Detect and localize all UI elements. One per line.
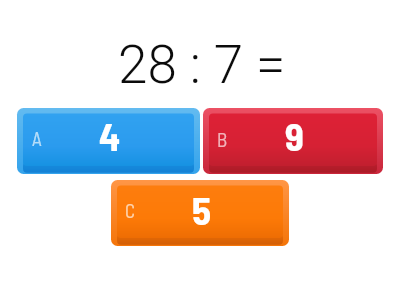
staticText: 4 bbox=[99, 112, 121, 159]
staticText: 28 : 7 = bbox=[118, 34, 286, 96]
button[interactable]: B bbox=[203, 108, 383, 174]
staticText: 9 bbox=[285, 112, 304, 159]
staticText: 5 bbox=[192, 186, 212, 233]
staticText: C bbox=[125, 199, 135, 222]
button[interactable]: C bbox=[111, 180, 289, 246]
staticText: B bbox=[217, 128, 228, 151]
button[interactable]: A bbox=[17, 108, 200, 174]
staticText: A bbox=[32, 127, 42, 150]
